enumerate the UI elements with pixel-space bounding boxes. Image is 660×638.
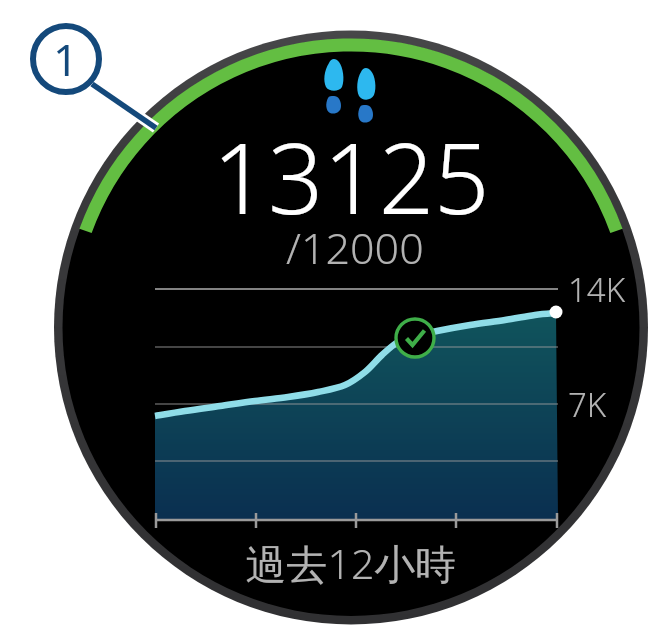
button[interactable]: Steps complication, 13125 of 12000 steps [0, 0, 660, 638]
